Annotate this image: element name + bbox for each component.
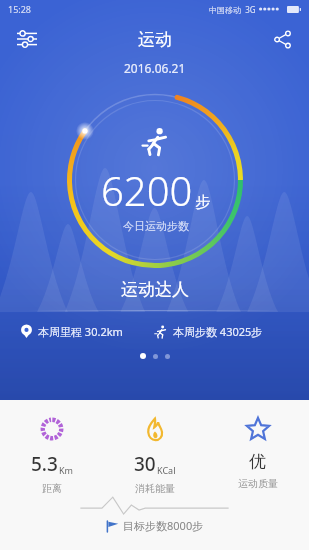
- button[interactable]: Settings: [10, 22, 44, 56]
- button[interactable]: [153, 354, 158, 359]
- button[interactable]: [140, 353, 146, 359]
- staticText: 优: [249, 451, 266, 472]
- button[interactable]: 优: [206, 416, 309, 490]
- staticText: 运动质量: [238, 477, 278, 490]
- staticText: 距离: [42, 482, 62, 495]
- button[interactable]: Share: [265, 22, 299, 56]
- staticText: 今日运动步数: [123, 219, 189, 233]
- staticText: 消耗能量: [135, 482, 175, 495]
- staticText: 步: [195, 193, 210, 212]
- staticText: 运动达人: [121, 279, 189, 300]
- staticText: 本周里程 30.2km: [38, 324, 123, 339]
- staticText: 30: [134, 451, 156, 477]
- staticText: 2016.06.21: [124, 60, 186, 76]
- staticText: 5.3: [31, 451, 58, 477]
- staticText: 运动: [138, 29, 172, 50]
- button[interactable]: [165, 354, 170, 359]
- staticText: Km: [59, 464, 73, 476]
- staticText: 中国移动 3G: [209, 4, 256, 15]
- button[interactable]: 本周步数 43025步: [154, 324, 289, 339]
- button[interactable]: 本周里程 30.2km: [20, 324, 154, 339]
- button[interactable]: Steps progress: [65, 90, 245, 270]
- staticText: 目标步数8000步: [123, 518, 204, 533]
- staticText: KCal: [157, 464, 176, 476]
- staticText: 6200: [101, 163, 193, 217]
- button[interactable]: 5.3: [0, 416, 103, 495]
- staticText: 本周步数 43025步: [173, 324, 263, 339]
- staticText: 15:28: [8, 3, 32, 15]
- button[interactable]: 目标步数8000步: [105, 518, 204, 533]
- button[interactable]: 30: [103, 416, 206, 495]
